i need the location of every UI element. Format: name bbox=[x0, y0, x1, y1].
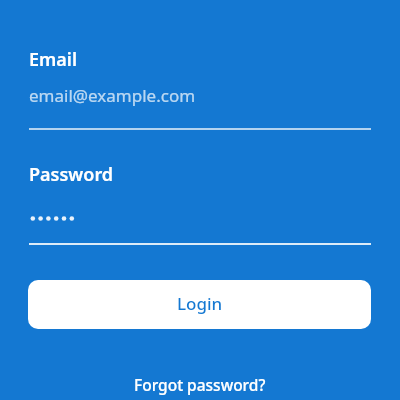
button[interactable]: email@example.com bbox=[29, 86, 371, 130]
staticText: Forgot password? bbox=[134, 374, 266, 395]
button[interactable]: Login bbox=[28, 280, 371, 329]
staticText: Email bbox=[29, 47, 78, 72]
staticText: Login bbox=[177, 292, 223, 315]
button[interactable] bbox=[29, 201, 371, 245]
staticText: Password bbox=[29, 162, 114, 187]
staticText: email@example.com bbox=[29, 84, 196, 107]
button[interactable]: Forgot password? bbox=[0, 370, 400, 398]
